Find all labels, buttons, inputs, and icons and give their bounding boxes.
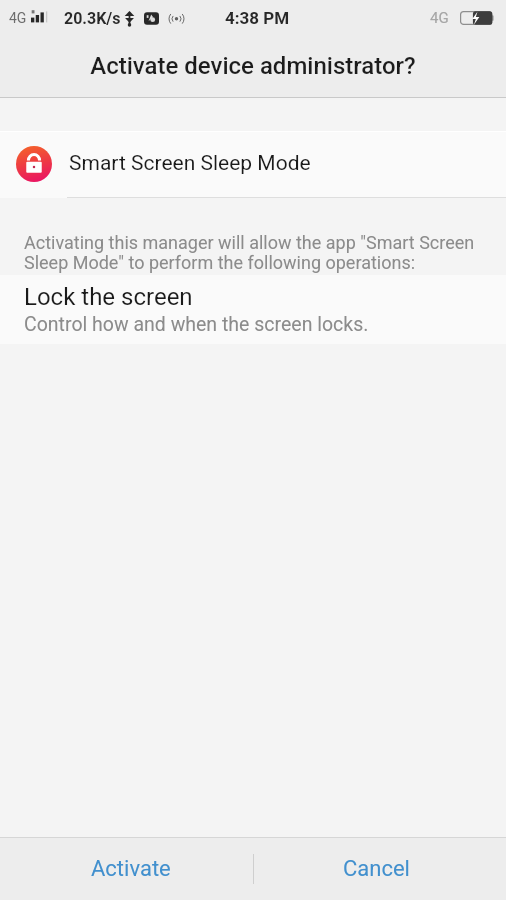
staticText: Activate device administrator? xyxy=(90,52,416,80)
staticText: Lock the screen xyxy=(24,283,193,311)
staticText: Activate xyxy=(91,856,171,882)
staticText: Activating this manager will allow the a… xyxy=(24,232,475,273)
staticText: 4:38 PM xyxy=(225,8,290,28)
button[interactable]: Smart Screen Sleep Mode app icon xyxy=(0,132,506,197)
staticText: Cancel xyxy=(343,856,410,882)
staticText: Smart Screen Sleep Mode xyxy=(69,151,311,176)
button[interactable]: Cancel xyxy=(253,838,506,900)
button[interactable]: Activate xyxy=(0,838,253,900)
staticText: Control how and when the screen locks. xyxy=(24,313,369,336)
staticText: 4G xyxy=(430,9,449,27)
staticText: 4G xyxy=(9,10,27,26)
other: Smart Screen Sleep Mode app icon xyxy=(16,146,52,182)
staticText: 20.3K/s xyxy=(64,9,121,28)
button[interactable]: Lock the screen xyxy=(0,275,506,344)
